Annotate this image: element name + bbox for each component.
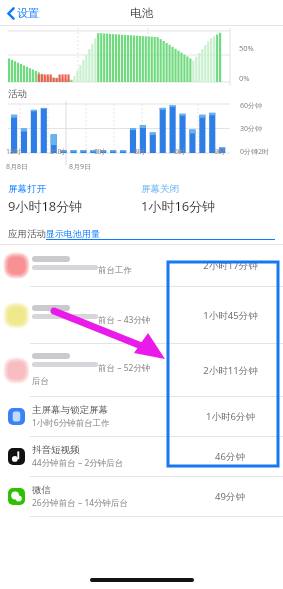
staticText: 44分钟前台 – 2分钟后台 xyxy=(32,457,124,469)
staticText: 显示电池用量 xyxy=(46,228,100,239)
staticText: 0分钟 xyxy=(240,147,259,157)
staticText: 后台 xyxy=(32,376,49,387)
staticText: 活动 xyxy=(8,88,27,100)
button[interactable]: 微信 xyxy=(0,477,283,517)
staticText: 50% xyxy=(239,43,254,53)
staticText: 3时 xyxy=(134,147,146,157)
staticText: 1小时16分钟 xyxy=(141,197,216,215)
staticText: 电池 xyxy=(130,6,153,20)
staticText: 9小时18分钟 xyxy=(8,197,83,215)
button[interactable]: 抖音短视频 xyxy=(0,437,283,477)
staticText: 1小时6分钟前台工作 xyxy=(32,417,110,429)
staticText: 前台 – 52分钟 xyxy=(98,362,151,374)
staticText: 8月8日 xyxy=(6,162,29,172)
staticText: 8月9日 xyxy=(69,162,92,172)
staticText: 30分钟 xyxy=(240,124,263,134)
staticText: 0时 xyxy=(94,147,106,157)
staticText: 主屏幕与锁定屏幕 xyxy=(32,404,108,416)
button[interactable]: 前台 – 52分钟 xyxy=(0,344,283,397)
staticText: 0% xyxy=(239,73,250,83)
staticText: 屏幕关闭 xyxy=(141,183,179,195)
staticText: 12时 xyxy=(254,147,270,157)
staticText: 应用活动 xyxy=(8,228,46,240)
staticText: 前台工作 xyxy=(98,265,132,276)
staticText: 微信 xyxy=(32,484,51,496)
staticText: 46分钟 xyxy=(215,450,245,463)
button[interactable]: 前台 – 43分钟 xyxy=(0,287,283,344)
staticText: 屏幕打开 xyxy=(8,183,46,195)
button[interactable]: 设置 xyxy=(4,3,42,23)
button[interactable]: 显示电池用量 xyxy=(46,228,275,240)
staticText: 49分钟 xyxy=(215,490,245,503)
button[interactable]: 前台工作 xyxy=(0,245,283,287)
staticText: 1小时45分钟 xyxy=(203,309,258,322)
staticText: 2小时17分钟 xyxy=(203,259,258,272)
staticText: 26分钟前台 – 14分钟后台 xyxy=(32,497,129,509)
staticText: 设置 xyxy=(17,6,39,20)
staticText: 抖音短视频 xyxy=(32,444,80,456)
staticText: 2小时11分钟 xyxy=(203,364,258,377)
staticText: 1小时6分钟 xyxy=(206,410,255,423)
button[interactable]: 主屏幕与锁定屏幕 xyxy=(0,397,283,437)
staticText: 21时 xyxy=(50,147,66,157)
staticText: 18时 xyxy=(6,147,22,157)
staticText: 6时 xyxy=(174,147,186,157)
staticText: 9时 xyxy=(214,147,226,157)
staticText: 60分钟 xyxy=(240,101,263,111)
staticText: 前台 – 43分钟 xyxy=(98,314,151,326)
